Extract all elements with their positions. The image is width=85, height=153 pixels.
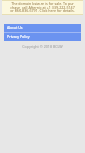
staticText: Copyright © 2018 BCLW [0, 44, 85, 49]
staticText: Privacy Policy [7, 34, 30, 39]
staticText: About Us [7, 25, 23, 30]
button[interactable]: Privacy Policy [4, 33, 81, 41]
button[interactable]: Domain for sale notice [2, 0, 83, 15]
button[interactable]: About Us [4, 24, 81, 32]
staticText: or 866-836-6791. Click here for details. [2, 8, 83, 13]
staticText: The domain bsiw.re is for sale. To pur [2, 1, 83, 6]
staticText: chase, call Afternic at +1 339-222-5147 [2, 5, 83, 10]
